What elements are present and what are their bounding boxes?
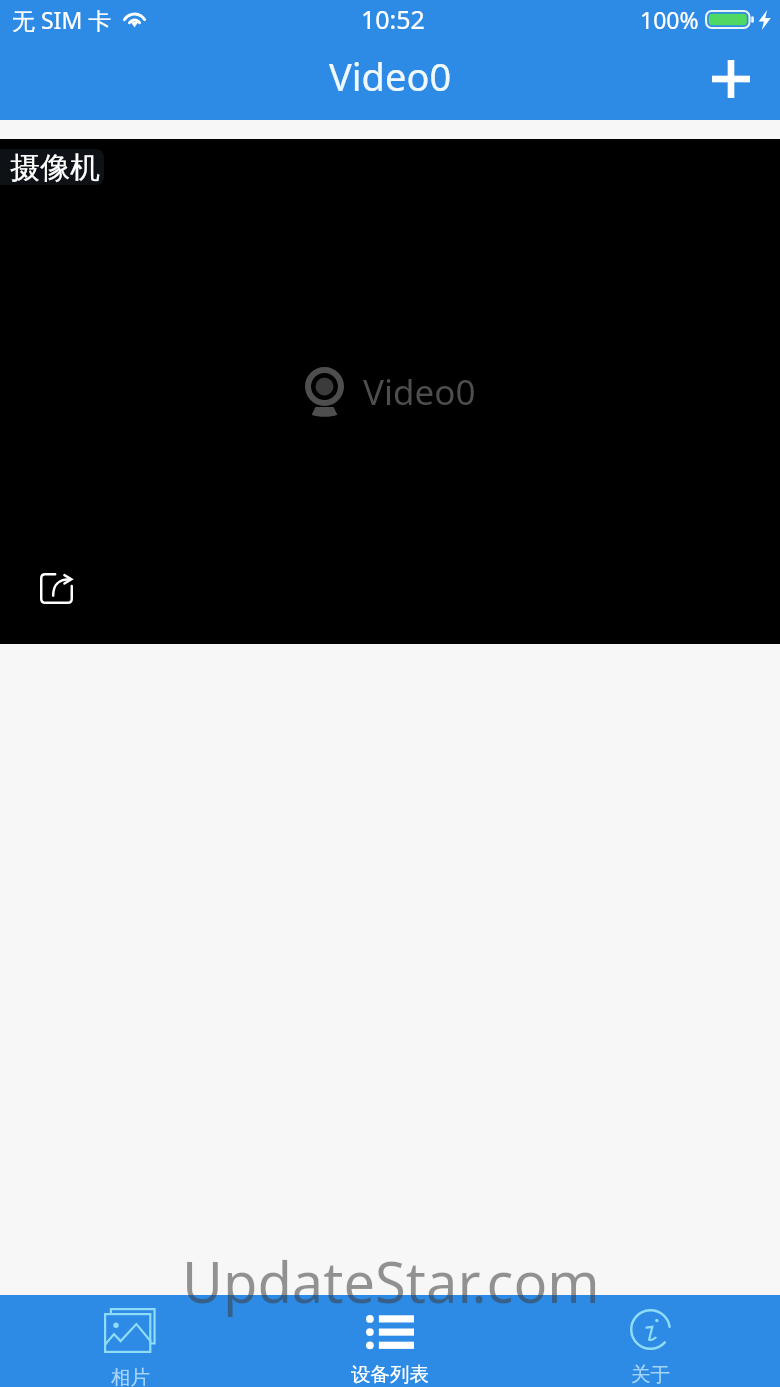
staticText: 关于 [631,1362,670,1387]
staticText: UpdateStar.com [182,1243,600,1319]
staticText: Video0 [329,50,452,102]
button[interactable]: 关于 [520,1295,780,1387]
button[interactable]: Share [30,562,82,614]
staticText: 设备列表 [351,1362,429,1387]
staticText: 100% [640,4,699,35]
staticText: 10:52 [361,2,425,36]
staticText: 无 SIM 卡 [12,4,112,35]
staticText: 相片 [111,1365,150,1387]
button[interactable]: 设备列表 [260,1295,520,1387]
staticText: Video0 [363,368,476,416]
staticText: 摄像机 [10,149,100,185]
button[interactable]: Camera preview Video0 [0,139,780,644]
button[interactable]: 相片 [0,1295,260,1387]
button[interactable]: Add [693,41,769,117]
